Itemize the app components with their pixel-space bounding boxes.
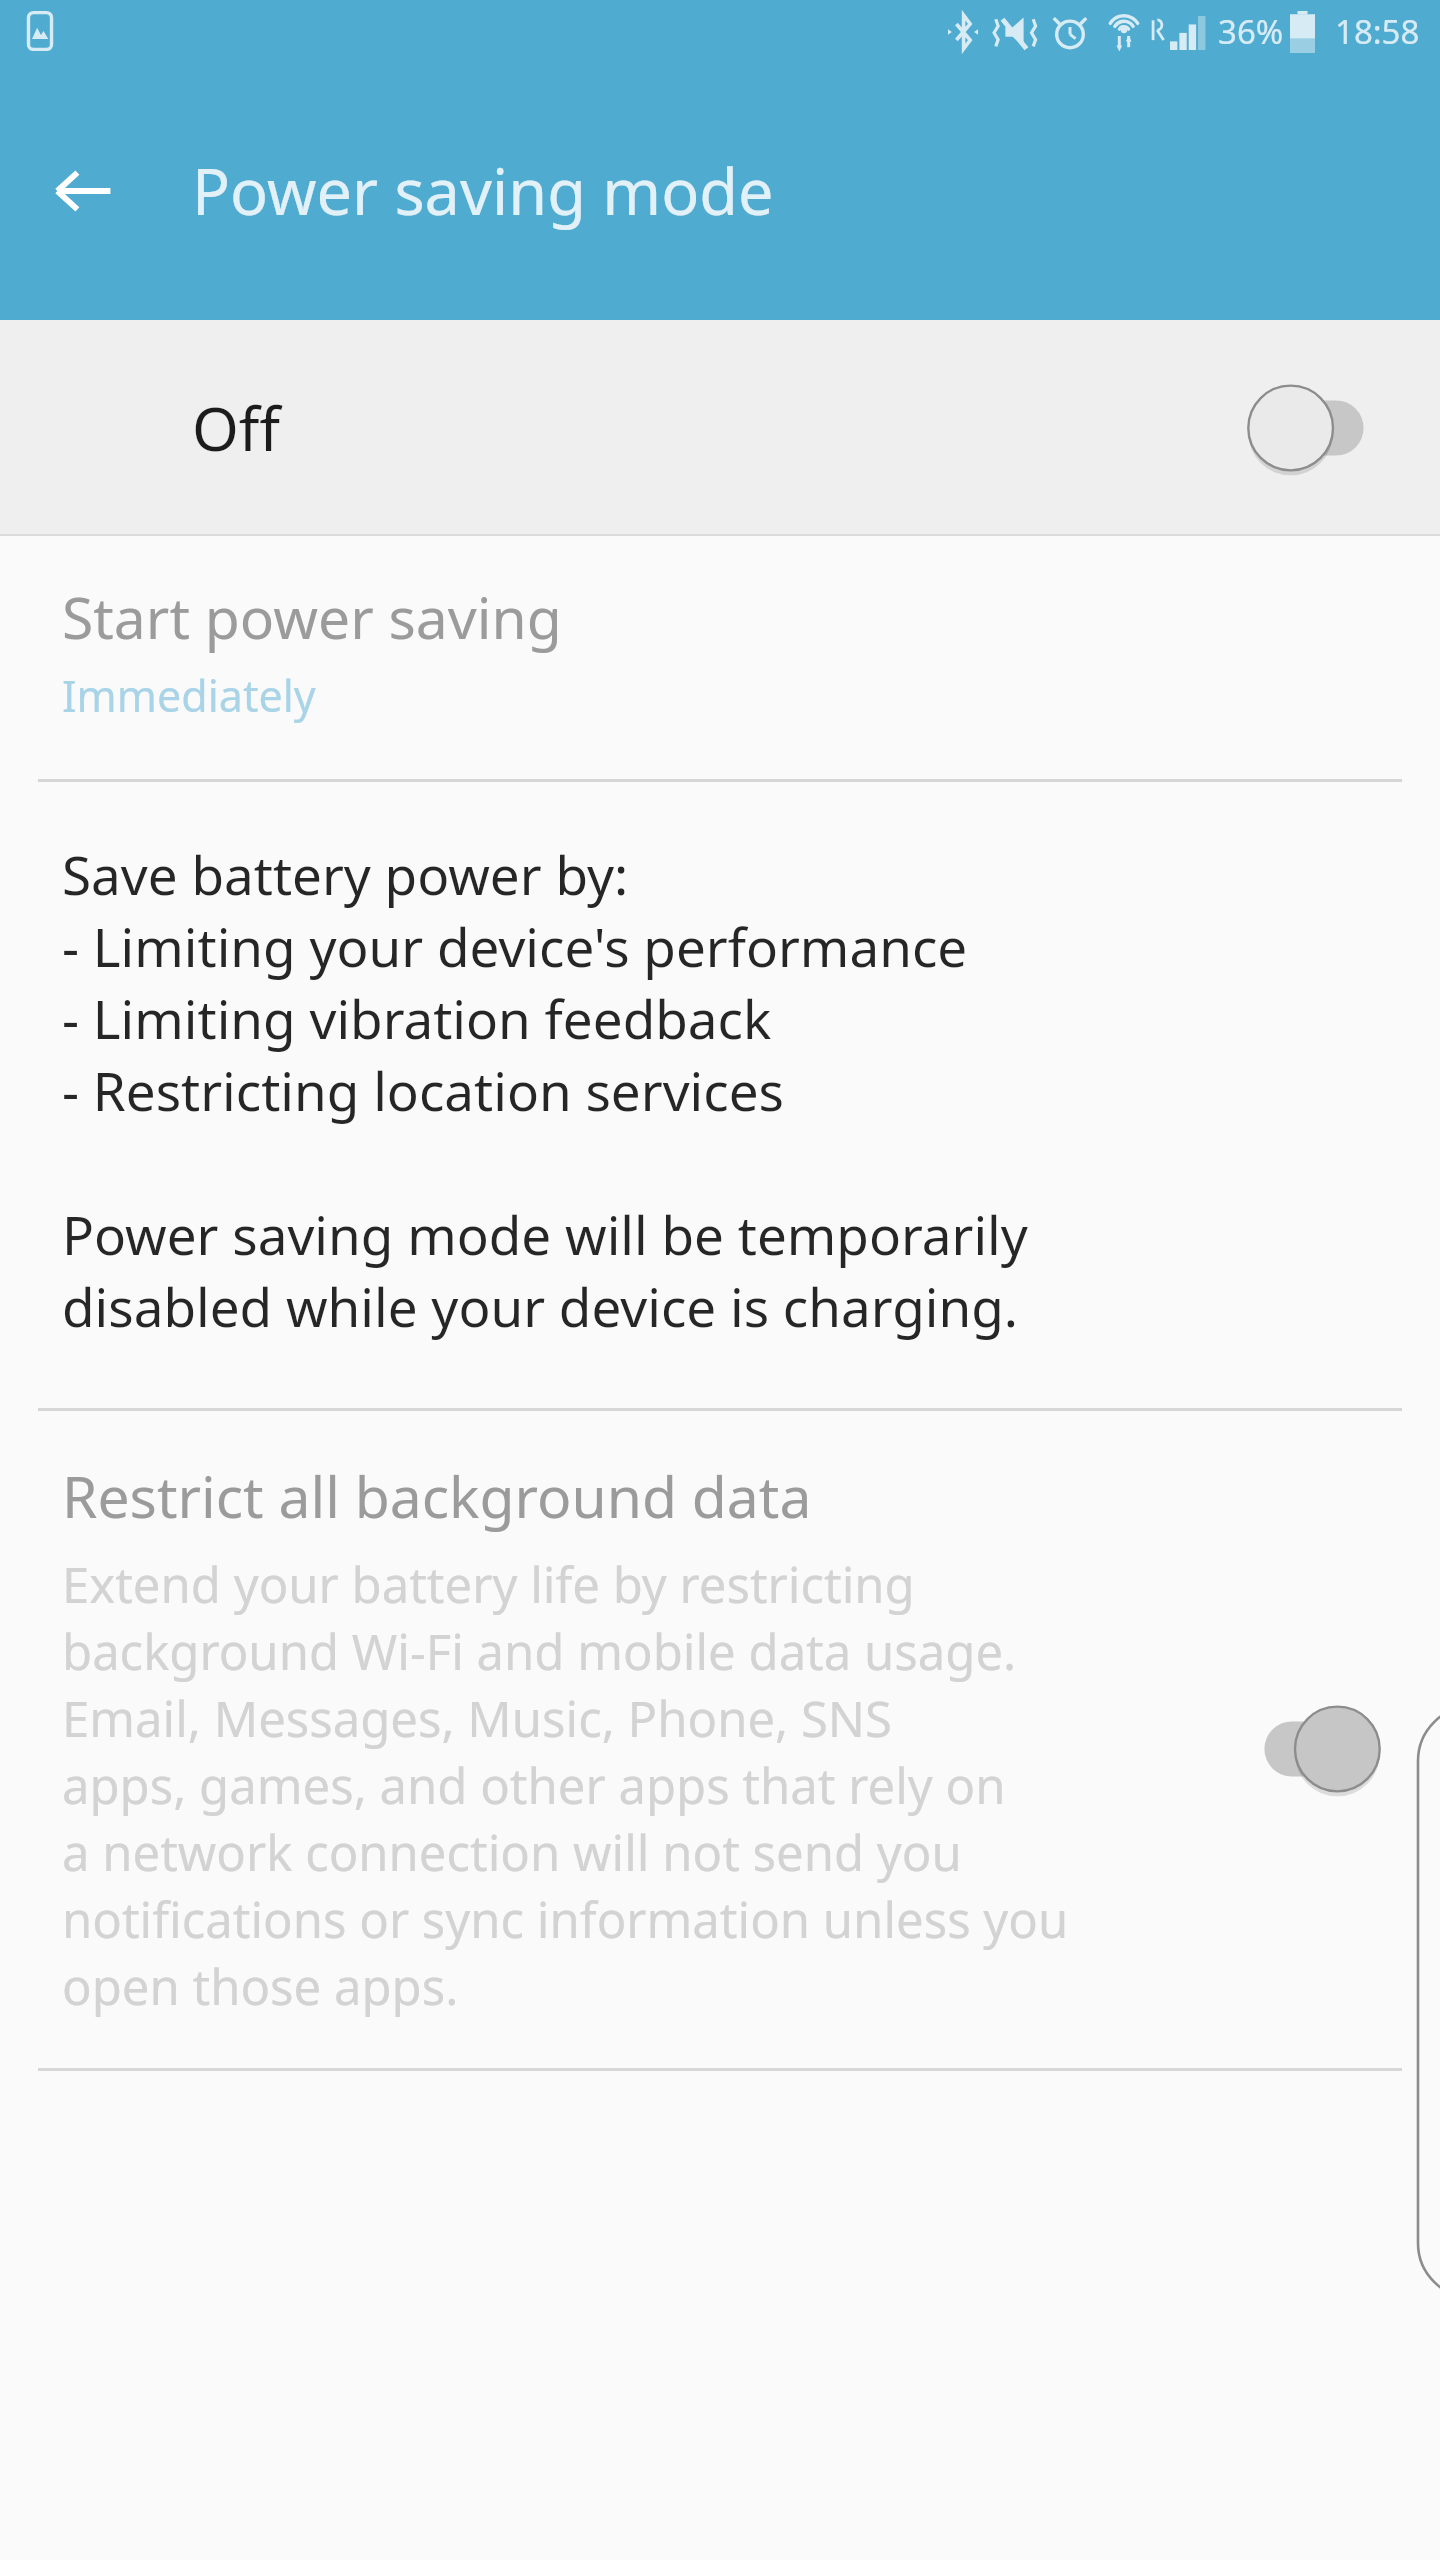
- staticText: a network connection will not send you: [62, 1819, 962, 1886]
- staticText: - Limiting your device's performance: [62, 910, 968, 982]
- staticText: Off: [192, 387, 281, 469]
- button[interactable]: Start power saving: [0, 578, 1440, 733]
- staticText: 36%: [1218, 9, 1284, 54]
- staticText: background Wi-Fi and mobile data usage.: [62, 1618, 1017, 1685]
- staticText: notifications or sync information unless…: [62, 1886, 1069, 1953]
- staticText: open those apps.: [62, 1953, 459, 2020]
- staticText: disabled while your device is charging.: [62, 1270, 1018, 1342]
- staticText: Power saving mode: [192, 148, 774, 234]
- staticText: - Restricting location services: [62, 1054, 784, 1126]
- staticText: Immediately: [62, 666, 316, 725]
- button[interactable]: Off: [0, 320, 1440, 536]
- staticText: Email, Messages, Music, Phone, SNS: [62, 1685, 892, 1752]
- button[interactable]: Restrict all background data: [0, 1457, 1440, 2020]
- staticText: Save battery power by:: [62, 838, 629, 910]
- staticText: 18:58: [1335, 9, 1420, 54]
- staticText: apps, games, and other apps that rely on: [62, 1752, 1006, 1819]
- staticText: - Limiting vibration feedback: [62, 982, 772, 1054]
- button[interactable]: Back: [40, 148, 126, 234]
- button[interactable]: Switch on: [1234, 1694, 1394, 1804]
- button[interactable]: Switch off: [1234, 373, 1394, 483]
- staticText: Power saving mode will be temporarily: [62, 1198, 1028, 1270]
- staticText: Start power saving: [62, 578, 562, 656]
- staticText: Restrict all background data: [62, 1457, 812, 1535]
- staticText: Extend your battery life by restricting: [62, 1551, 915, 1618]
